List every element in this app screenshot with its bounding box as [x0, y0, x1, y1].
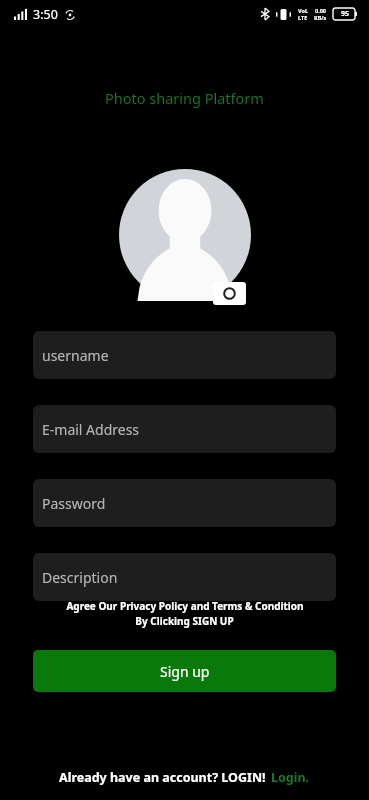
staticText: Photo sharing Platform: [105, 88, 264, 108]
staticText: 3:50: [33, 6, 58, 23]
button[interactable]: Already have an account? LOGIN!: [59, 769, 310, 786]
staticText: 95: [341, 9, 350, 19]
staticText: Password: [42, 494, 106, 513]
button[interactable]: Change profile photo: [213, 282, 246, 305]
staticText: username: [42, 346, 109, 365]
staticText: VoL: [298, 7, 308, 14]
staticText: Description: [42, 568, 118, 587]
staticText: Login.: [271, 769, 310, 786]
button[interactable]: Sign up: [33, 650, 336, 692]
button[interactable]: Description: [33, 553, 336, 601]
button[interactable]: E-mail Address: [33, 405, 336, 453]
staticText: LTE: [298, 14, 308, 21]
staticText: Already have an account? LOGIN!: [59, 769, 266, 786]
button[interactable]: Password: [33, 479, 336, 527]
button[interactable]: username: [33, 331, 336, 379]
staticText: Sign up: [160, 662, 210, 681]
staticText: 0.00: [315, 7, 326, 14]
staticText: E-mail Address: [42, 420, 140, 439]
staticText: KB/s: [314, 14, 327, 21]
staticText: By Clicking SIGN UP: [135, 614, 234, 628]
staticText: Agree Our Privacy Policy and Terms & Con…: [66, 599, 304, 613]
